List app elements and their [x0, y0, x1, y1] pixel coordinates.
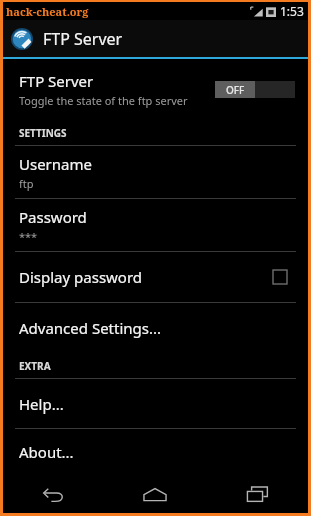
button[interactable]: About...: [3, 429, 308, 475]
button[interactable]: Toggle FTP server off: [215, 81, 295, 98]
staticText: Help...: [19, 394, 64, 414]
staticText: hack-cheat.org: [6, 4, 89, 19]
button[interactable]: Display password: [3, 252, 308, 302]
button[interactable]: Help...: [3, 379, 308, 428]
button[interactable]: FTP Server: [3, 59, 308, 119]
button[interactable]: Recent apps: [235, 477, 279, 511]
staticText: FTP Server: [19, 71, 94, 91]
button[interactable]: Username: [3, 146, 308, 198]
staticText: Toggle the state of the ftp server: [19, 93, 188, 108]
staticText: Username: [19, 154, 92, 174]
button[interactable]: Home: [133, 477, 177, 511]
staticText: ftp: [19, 176, 34, 191]
staticText: Advanced Settings...: [19, 318, 162, 338]
staticText: Password: [19, 207, 87, 227]
button[interactable]: Back: [32, 477, 76, 511]
staticText: About...: [19, 442, 74, 462]
staticText: 1:53: [280, 3, 304, 19]
staticText: SETTINGS: [19, 126, 67, 140]
staticText: ***: [19, 229, 38, 244]
staticText: EXTRA: [19, 359, 51, 373]
button[interactable]: Advanced Settings...: [3, 303, 308, 352]
staticText: FTP Server: [43, 28, 123, 50]
staticText: Display password: [19, 267, 273, 287]
button[interactable]: Password: [3, 199, 308, 251]
staticText: OFF: [226, 83, 245, 97]
